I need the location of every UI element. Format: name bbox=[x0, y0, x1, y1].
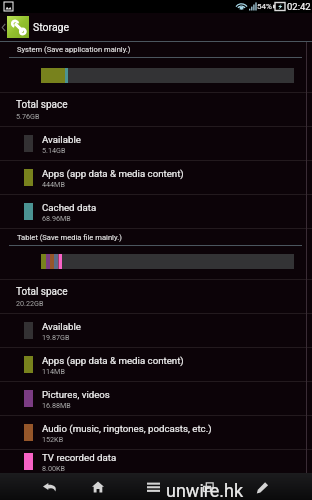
staticText: 20.22GB bbox=[16, 299, 44, 307]
staticText: 152KB bbox=[42, 435, 64, 443]
button[interactable]: Menu bbox=[140, 474, 166, 500]
button[interactable]: Pictures, videos bbox=[0, 382, 312, 415]
button[interactable]: Home bbox=[85, 474, 111, 500]
button[interactable]: Back bbox=[0, 13, 312, 41]
staticText: 114MB bbox=[42, 367, 65, 375]
staticText: System (Save application mainly.) bbox=[17, 45, 131, 54]
button[interactable]: Cached data bbox=[0, 195, 312, 228]
button[interactable]: Available bbox=[0, 127, 312, 160]
button[interactable]: Recent apps bbox=[195, 474, 221, 500]
staticText: unwire.hk bbox=[166, 480, 244, 500]
staticText: Pictures, videos bbox=[42, 389, 110, 400]
button[interactable]: Edit bbox=[249, 474, 275, 500]
staticText: Storage bbox=[33, 21, 70, 33]
staticText: 8.00KB bbox=[42, 464, 66, 472]
staticText: 19.87GB bbox=[42, 333, 70, 341]
staticText: 444MB bbox=[42, 180, 65, 188]
staticText: 68.96MB bbox=[42, 214, 71, 222]
button[interactable]: Apps (app data & media content) bbox=[0, 348, 312, 381]
button[interactable]: Back bbox=[37, 474, 63, 500]
staticText: Audio (music, ringtones, podcasts, etc.) bbox=[42, 423, 212, 434]
other: Back bbox=[1, 22, 6, 33]
button[interactable]: Apps (app data & media content) bbox=[0, 161, 312, 194]
staticText: 5.14GB bbox=[42, 146, 66, 154]
button[interactable]: Available bbox=[0, 314, 312, 347]
staticText: 54% bbox=[257, 2, 272, 11]
staticText: 5.76GB bbox=[16, 112, 40, 120]
staticText: Total space bbox=[16, 286, 68, 298]
staticText: TV recorded data bbox=[42, 452, 117, 463]
staticText: Apps (app data & media content) bbox=[42, 355, 184, 366]
button[interactable]: Audio (music, ringtones, podcasts, etc.) bbox=[0, 416, 312, 449]
staticText: 02:42 bbox=[287, 1, 311, 12]
staticText: Available bbox=[42, 321, 81, 332]
staticText: Apps (app data & media content) bbox=[42, 168, 184, 179]
staticText: Tablet (Save media file mainly.) bbox=[17, 233, 122, 242]
staticText: Total space bbox=[16, 99, 68, 111]
staticText: Cached data bbox=[42, 202, 97, 213]
button[interactable]: Total space bbox=[0, 280, 312, 313]
button[interactable]: Total space bbox=[0, 93, 312, 126]
button[interactable]: TV recorded data bbox=[0, 450, 312, 473]
staticText: 16.88MB bbox=[42, 401, 71, 409]
staticText: Available bbox=[42, 134, 81, 145]
